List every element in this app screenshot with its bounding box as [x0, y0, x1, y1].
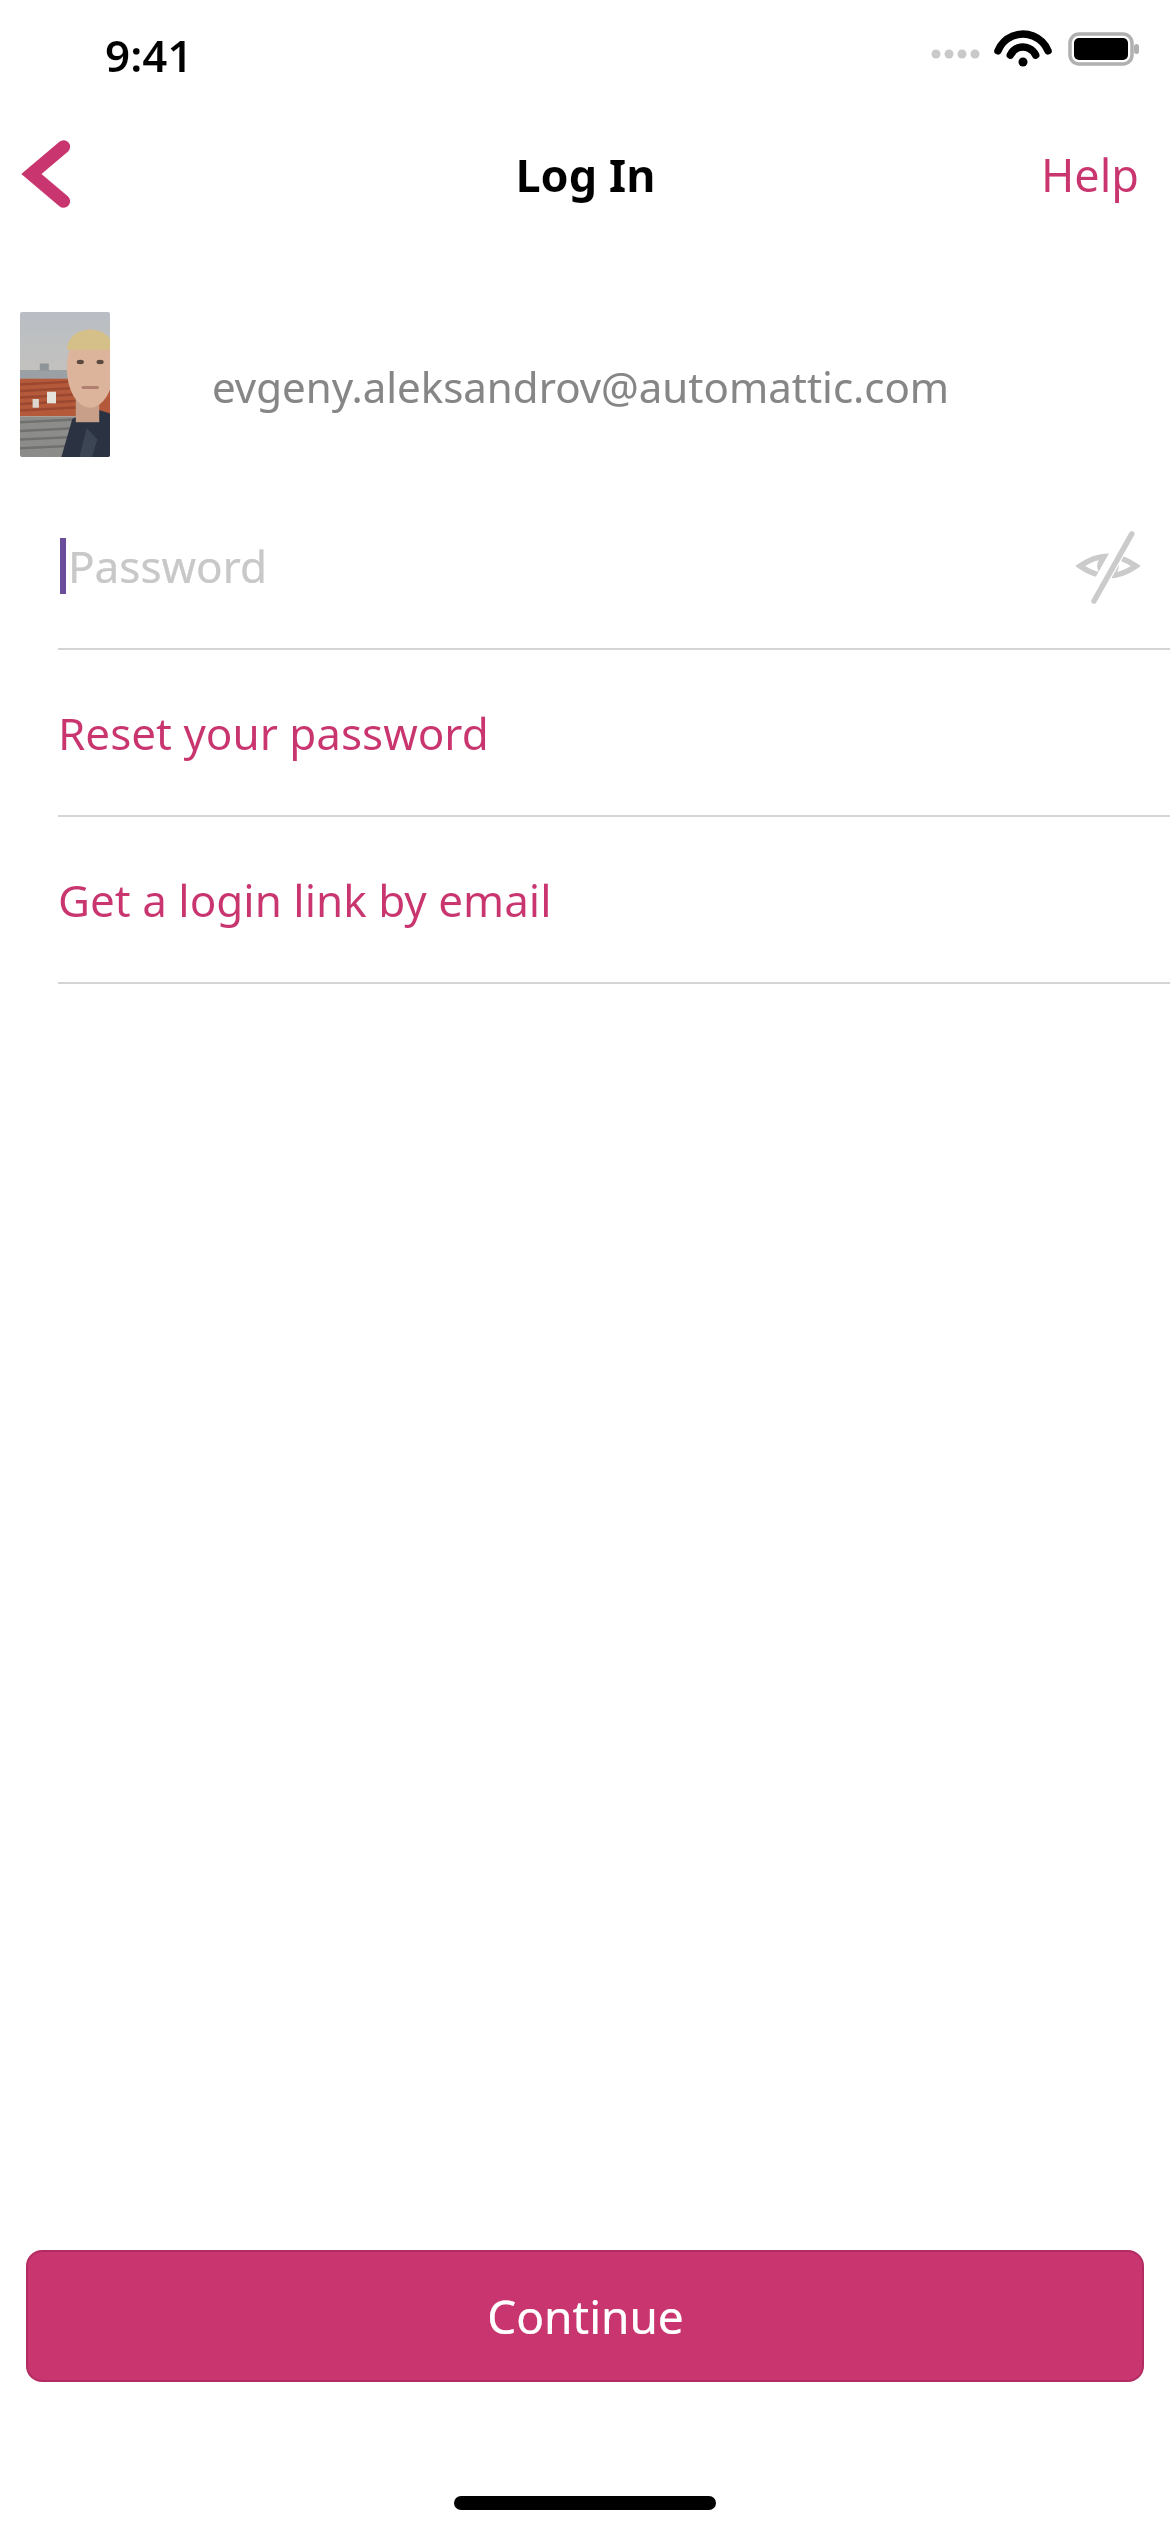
button[interactable]: Help [1033, 126, 1148, 222]
staticText: Help [1041, 144, 1140, 205]
button[interactable]: Get a login link by email [0, 817, 1170, 982]
staticText: Reset your password [58, 703, 489, 763]
button[interactable]: Show password [1060, 518, 1156, 614]
button[interactable]: Back [0, 126, 96, 222]
staticText: Get a login link by email [58, 870, 552, 930]
staticText: evgeny.aleksandrov@automattic.com [212, 358, 950, 415]
button[interactable]: Password [0, 480, 1170, 650]
staticText: Password [68, 536, 268, 596]
staticText: Continue [487, 2285, 684, 2348]
staticText: 9:41 [105, 25, 193, 85]
button[interactable]: Reset your password [0, 650, 1170, 815]
button[interactable]: Continue [28, 2252, 1142, 2380]
staticText: Log In [515, 144, 656, 205]
